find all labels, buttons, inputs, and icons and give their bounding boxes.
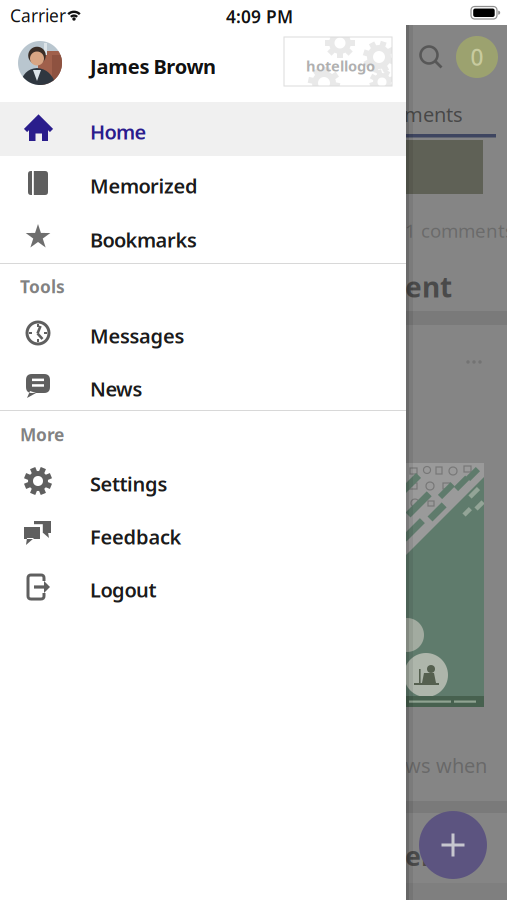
- staticText: ent: [405, 268, 452, 305]
- button[interactable]: Memorized: [0, 156, 406, 210]
- button[interactable]: Logout: [0, 560, 406, 614]
- staticText: More: [20, 423, 64, 446]
- button[interactable]: James Brown: [0, 25, 406, 102]
- staticText: 4:09 PM: [226, 5, 293, 28]
- button[interactable]: Feedback: [0, 507, 406, 561]
- button[interactable]: Profile: [456, 36, 498, 78]
- button[interactable]: Bookmarks: [0, 210, 406, 264]
- staticText: hotellogo: [306, 56, 375, 75]
- button[interactable]: Home: [0, 102, 406, 156]
- staticText: Logout: [90, 576, 156, 603]
- button[interactable]: More options: [462, 355, 486, 369]
- staticText: 1 comments: [405, 218, 507, 243]
- staticText: ments: [404, 101, 463, 128]
- staticText: en: [405, 838, 438, 873]
- button[interactable]: Search: [413, 39, 449, 75]
- staticText: Home: [90, 118, 146, 145]
- button[interactable]: Settings: [0, 454, 406, 508]
- staticText: Messages: [90, 322, 184, 349]
- staticText: James Brown: [90, 53, 216, 80]
- staticText: ws when: [405, 752, 487, 779]
- staticText: Settings: [90, 470, 167, 497]
- staticText: Carrier: [10, 4, 66, 27]
- staticText: Memorized: [90, 172, 198, 199]
- staticText: Bookmarks: [90, 226, 197, 253]
- staticText: News: [90, 375, 142, 402]
- button[interactable]: Add: [419, 811, 487, 879]
- button[interactable]: Messages: [0, 306, 406, 360]
- staticText: Tools: [20, 275, 65, 298]
- staticText: Feedback: [90, 523, 181, 550]
- button[interactable]: News: [0, 359, 406, 413]
- staticText: 0: [470, 42, 483, 72]
